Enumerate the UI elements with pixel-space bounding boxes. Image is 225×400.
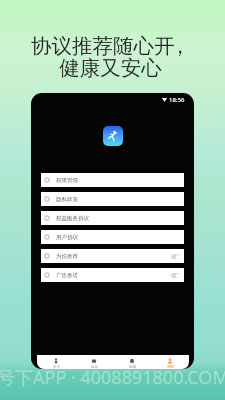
button[interactable]: 权益服务协议 [41, 211, 184, 225]
button[interactable]: 用户协议 [41, 230, 184, 244]
staticText: 健康又安心 [59, 55, 162, 81]
staticText: 商城 [129, 365, 136, 369]
staticText: 号下APP · 4008891800.COM [0, 365, 225, 390]
staticText: 广告推送 [56, 272, 78, 279]
button[interactable]: 我的 [151, 356, 189, 369]
button[interactable]: Sports app icon [103, 126, 123, 146]
staticText: 用户协议 [56, 234, 78, 241]
staticText: 为你推荐 [56, 253, 78, 260]
staticText: 我的 [167, 365, 174, 369]
button[interactable]: 广告推送 [41, 268, 184, 282]
button[interactable]: 首页 [37, 356, 75, 369]
button[interactable]: 为你推荐 [41, 249, 184, 263]
staticText: 协议推荐随心开 [31, 33, 175, 59]
button[interactable]: 商城 [113, 356, 151, 369]
button[interactable]: 隐私政策 [41, 192, 184, 206]
button[interactable]: Toggle 广告推送 [171, 273, 180, 278]
button[interactable]: 运动 [75, 356, 113, 369]
staticText: 权益服务协议 [56, 215, 89, 222]
staticText: 权限管理 [56, 177, 78, 184]
staticText: 隐私政策 [56, 196, 78, 203]
staticText: 运动 [91, 365, 98, 369]
staticText: ， [170, 33, 191, 59]
button[interactable]: 权限管理 [41, 173, 184, 187]
button[interactable]: Toggle 为你推荐 [171, 254, 180, 259]
staticText: 首页 [53, 365, 60, 369]
staticText: 18:56 [169, 96, 185, 104]
